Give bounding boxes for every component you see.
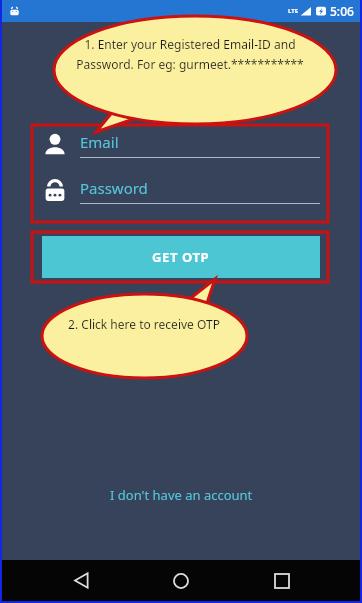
staticText: I don't have an account <box>110 486 253 504</box>
staticText: 5:06 <box>330 3 354 19</box>
other: Password field <box>42 178 68 204</box>
staticText: 2. Click here to receive OTP <box>68 316 220 332</box>
staticText: 1. Enter your Registered Email-ID and Pa… <box>60 36 320 73</box>
button[interactable]: GET OTP <box>42 236 320 278</box>
staticText: Email <box>80 132 119 152</box>
other: Email field <box>42 132 68 158</box>
staticText: GET OTP <box>152 248 210 266</box>
button[interactable]: Email field <box>42 132 320 158</box>
staticText: LTE <box>288 7 299 15</box>
button[interactable]: Back <box>59 560 103 601</box>
staticText: Password <box>80 178 148 198</box>
button[interactable]: I don't have an account <box>100 482 263 508</box>
button[interactable]: Home <box>159 560 203 601</box>
button[interactable]: Password field <box>42 178 320 204</box>
button[interactable]: Recent apps <box>260 560 304 601</box>
